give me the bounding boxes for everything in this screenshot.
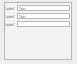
staticText: Label	[5, 6, 14, 11]
staticText: Label	[5, 22, 14, 27]
staticText: Text	[19, 6, 26, 11]
staticText: Text	[19, 14, 26, 19]
staticText: Label	[5, 14, 14, 19]
